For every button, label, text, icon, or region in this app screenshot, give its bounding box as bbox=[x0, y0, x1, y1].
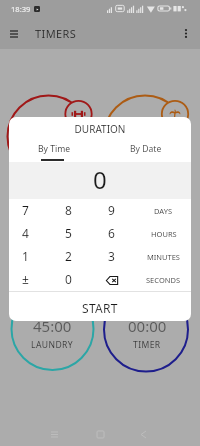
staticText: START bbox=[82, 300, 118, 316]
button[interactable]: 3 bbox=[95, 247, 138, 270]
staticText: 0 bbox=[93, 163, 107, 196]
staticText: LAUNDRY bbox=[31, 339, 74, 351]
button[interactable]: 0 bbox=[52, 270, 95, 293]
staticText: 2 bbox=[65, 248, 72, 264]
button[interactable]: 1 bbox=[9, 247, 52, 270]
staticText: By Time bbox=[38, 143, 71, 155]
button[interactable]: 6 bbox=[95, 224, 138, 247]
staticText: DAYS bbox=[154, 206, 173, 216]
button[interactable]: 9 bbox=[95, 201, 138, 224]
button[interactable]: MINUTES bbox=[138, 247, 191, 270]
staticText: 7 bbox=[22, 202, 29, 218]
button[interactable]: 4 bbox=[9, 224, 52, 247]
button[interactable]: DAYS bbox=[138, 201, 191, 224]
button[interactable]: 5 bbox=[52, 224, 95, 247]
button[interactable]: By Time bbox=[9, 134, 100, 161]
staticText: SECONDS bbox=[146, 275, 181, 285]
staticText: 1 bbox=[22, 248, 29, 264]
staticText: TIMERS bbox=[35, 26, 77, 41]
staticText: 0 bbox=[65, 271, 72, 287]
staticText: HOURS bbox=[151, 229, 177, 239]
staticText: DURATION bbox=[9, 122, 191, 136]
button[interactable]: HOURS bbox=[138, 224, 191, 247]
staticText: TIMER bbox=[133, 339, 161, 351]
staticText: 00:00 bbox=[128, 316, 167, 336]
staticText: ± bbox=[22, 271, 29, 287]
staticText: 4 bbox=[22, 225, 29, 241]
staticText: 3 bbox=[108, 248, 115, 264]
button[interactable]: 8 bbox=[52, 201, 95, 224]
button[interactable]: ± bbox=[9, 270, 52, 293]
button[interactable]: 2 bbox=[52, 247, 95, 270]
button[interactable]: More options bbox=[172, 20, 199, 47]
staticText: By Date bbox=[130, 143, 162, 155]
staticText: MINUTES bbox=[147, 252, 180, 262]
button[interactable]: SECONDS bbox=[138, 270, 191, 293]
staticText: 6 bbox=[108, 225, 115, 241]
button[interactable]: By Date bbox=[100, 134, 191, 161]
staticText: 5 bbox=[65, 225, 72, 241]
staticText: 18:39 bbox=[11, 4, 31, 14]
button[interactable]: Backspace bbox=[95, 270, 138, 293]
staticText: 8 bbox=[65, 202, 72, 218]
button[interactable]: 7 bbox=[9, 201, 52, 224]
button[interactable]: START bbox=[9, 292, 191, 321]
button[interactable]: Navigation menu bbox=[0, 20, 27, 47]
staticText: 45:00 bbox=[33, 316, 72, 336]
staticText: 9 bbox=[108, 202, 115, 218]
